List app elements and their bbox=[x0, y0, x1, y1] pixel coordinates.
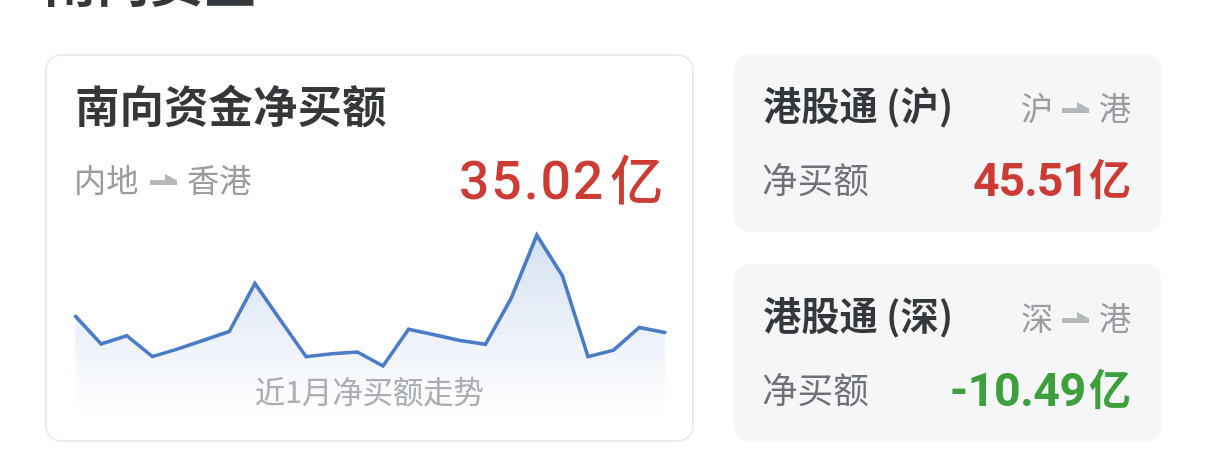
staticText: -10.49 bbox=[950, 363, 1086, 417]
staticText: 南向资金 bbox=[43, 0, 257, 17]
staticText: 近1月净买额走势 bbox=[255, 368, 484, 412]
staticText: 净买额 bbox=[762, 152, 869, 204]
staticText: 亿 bbox=[1089, 356, 1132, 417]
staticText: 亿 bbox=[610, 138, 664, 215]
staticText: 内地 bbox=[74, 155, 139, 202]
staticText: 香港 bbox=[187, 155, 252, 202]
other: northbound to Hong Kong bbox=[1062, 312, 1089, 323]
staticText: 35.02 bbox=[459, 149, 606, 212]
staticText: 深 bbox=[1021, 293, 1054, 340]
other: from mainland to Hong Kong bbox=[150, 174, 177, 185]
staticText: (沪) bbox=[886, 76, 954, 131]
button[interactable]: 南向资金净买额 bbox=[45, 54, 694, 442]
staticText: 沪 bbox=[1021, 83, 1054, 130]
staticText: 港股通 bbox=[763, 76, 878, 131]
staticText: 亿 bbox=[1089, 146, 1132, 207]
button[interactable]: 港股通 bbox=[734, 54, 1161, 232]
other: northbound to Hong Kong bbox=[1062, 102, 1089, 113]
button[interactable]: 港股通 bbox=[734, 264, 1161, 442]
staticText: 南向资金净买额 bbox=[75, 71, 387, 135]
staticText: 港 bbox=[1099, 293, 1132, 340]
staticText: 港股通 bbox=[763, 286, 878, 341]
staticText: 净买额 bbox=[762, 362, 869, 414]
staticText: (深) bbox=[886, 286, 954, 341]
staticText: 港 bbox=[1099, 83, 1132, 130]
staticText: 45.51 bbox=[973, 153, 1088, 207]
